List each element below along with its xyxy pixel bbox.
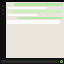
button[interactable]: Send bbox=[60, 60, 63, 63]
button[interactable]: Navigation rail bbox=[0, 0, 6, 64]
